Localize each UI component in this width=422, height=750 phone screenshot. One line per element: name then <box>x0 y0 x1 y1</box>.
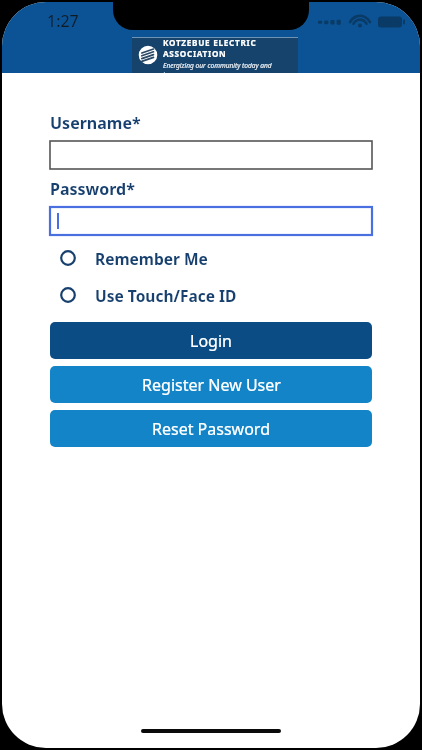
staticText: Password* <box>50 178 135 200</box>
staticText: Use Touch/Face ID <box>95 285 237 305</box>
button[interactable]: Login <box>50 322 372 359</box>
button[interactable]: Register New User <box>50 366 372 403</box>
button[interactable]: Reset Password <box>50 410 372 447</box>
staticText: Login <box>190 330 232 352</box>
button[interactable]: Remember Me <box>50 248 372 268</box>
button[interactable]: Use Touch/Face ID <box>50 285 372 305</box>
staticText: 1:27 <box>47 10 79 32</box>
staticText: Reset Password <box>152 418 270 440</box>
staticText: Username* <box>50 112 141 134</box>
staticText: Energizing our community today and tomor… <box>163 61 298 73</box>
button[interactable]: Kotzebue Electric Association logo <box>132 37 298 73</box>
other: Signal, Wi-Fi and battery status <box>318 14 406 30</box>
button[interactable] <box>50 207 372 235</box>
staticText: Register New User <box>142 374 281 396</box>
staticText: Remember Me <box>95 248 208 268</box>
staticText: KOTZEBUE ELECTRIC ASSOCIATION <box>163 37 298 59</box>
button[interactable] <box>50 141 372 169</box>
